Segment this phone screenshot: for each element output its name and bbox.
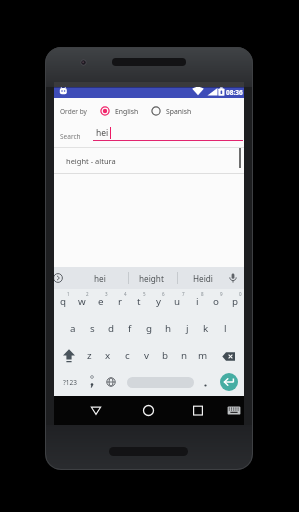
button[interactable]	[228, 273, 238, 284]
button[interactable]: f	[121, 320, 139, 336]
button[interactable]	[220, 373, 238, 391]
button[interactable]: Heidi	[183, 270, 223, 286]
button[interactable]: h	[159, 320, 177, 336]
staticText: v	[144, 349, 149, 362]
staticText: hei	[94, 273, 106, 284]
staticText: Order by	[60, 107, 87, 116]
button[interactable]: u	[168, 293, 186, 309]
staticText: 4	[124, 291, 127, 297]
staticText: 08:36	[226, 88, 243, 97]
staticText: x	[105, 349, 111, 362]
button[interactable]	[227, 406, 241, 416]
staticText: t	[137, 295, 141, 308]
staticText: Spanish	[166, 107, 192, 116]
button[interactable]: s	[83, 320, 101, 336]
staticText: g	[146, 322, 153, 335]
button[interactable]	[192, 405, 204, 416]
button[interactable]	[199, 374, 213, 390]
button[interactable]	[106, 377, 116, 387]
staticText: 0	[239, 291, 242, 297]
button[interactable]	[142, 404, 155, 417]
staticText: 9	[220, 291, 223, 297]
staticText: p	[232, 295, 239, 308]
staticText: ?123	[63, 378, 77, 387]
button[interactable]: l	[216, 320, 234, 336]
staticText: 2	[86, 291, 89, 297]
staticText: 7	[182, 291, 185, 297]
staticText: o	[213, 295, 219, 308]
staticText: l	[224, 322, 227, 335]
staticText: 5	[143, 291, 146, 297]
button[interactable]: q	[54, 293, 72, 309]
staticText: e	[98, 295, 104, 308]
staticText: n	[181, 349, 188, 362]
button[interactable]: y	[149, 293, 167, 309]
button[interactable]: e	[92, 293, 110, 309]
button[interactable]: w	[73, 293, 91, 309]
button[interactable]: k	[197, 320, 215, 336]
button[interactable]: g	[140, 320, 158, 336]
staticText: a	[70, 322, 76, 335]
staticText: f	[128, 322, 132, 335]
button[interactable]: j	[178, 320, 196, 336]
staticText: 6	[162, 291, 165, 297]
button[interactable]: r	[111, 293, 129, 309]
button[interactable]	[54, 273, 64, 283]
staticText: hei	[96, 127, 109, 139]
staticText: c	[125, 349, 130, 362]
button[interactable]	[222, 352, 236, 362]
button[interactable]: x	[99, 347, 117, 363]
staticText: r	[118, 295, 123, 308]
staticText: s	[90, 322, 95, 335]
staticText: b	[162, 349, 169, 362]
staticText: j	[186, 322, 189, 335]
staticText: u	[174, 295, 181, 308]
staticText: Heidi	[193, 273, 213, 284]
button[interactable]	[62, 347, 76, 363]
button[interactable]: p	[226, 293, 244, 309]
button[interactable]: hei	[80, 270, 120, 286]
button[interactable]: hei	[93, 125, 243, 141]
staticText: q	[60, 295, 67, 308]
staticText: k	[203, 322, 209, 335]
staticText: w	[78, 295, 86, 308]
staticText: 3	[105, 291, 108, 297]
button[interactable]: v	[137, 347, 155, 363]
button[interactable]	[90, 405, 102, 416]
button[interactable]: b	[156, 347, 174, 363]
button[interactable]: o	[207, 293, 225, 309]
button[interactable]: m	[194, 347, 212, 363]
button[interactable]: ?123	[59, 374, 81, 390]
staticText: Search	[60, 132, 81, 141]
staticText: height	[139, 273, 164, 284]
staticText: y	[156, 295, 161, 308]
button[interactable]: a	[64, 320, 82, 336]
staticText: i	[196, 295, 199, 308]
staticText: h	[165, 322, 172, 335]
button[interactable]: height - altura	[54, 148, 244, 173]
button[interactable]: i	[188, 293, 206, 309]
button[interactable]: z	[80, 347, 98, 363]
staticText: m	[198, 349, 208, 362]
staticText: height - altura	[66, 156, 116, 166]
button[interactable]: English	[96, 101, 142, 121]
button[interactable]: t	[130, 293, 148, 309]
button[interactable]	[84, 374, 100, 390]
staticText: 8	[201, 291, 204, 297]
button[interactable]	[127, 377, 194, 388]
button[interactable]: height	[129, 270, 173, 286]
staticText: d	[108, 322, 115, 335]
staticText: English	[115, 107, 139, 116]
staticText: 1	[67, 291, 70, 297]
button[interactable]: d	[102, 320, 120, 336]
staticText: z	[87, 349, 92, 362]
button[interactable]: Spanish	[148, 101, 196, 121]
button[interactable]: c	[118, 347, 136, 363]
button[interactable]: n	[175, 347, 193, 363]
